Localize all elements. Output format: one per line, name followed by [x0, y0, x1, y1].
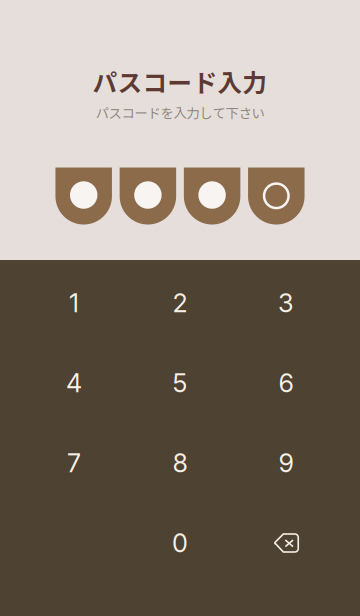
staticText: 9: [278, 448, 293, 478]
button[interactable]: 1: [21, 263, 127, 343]
button[interactable]: 4: [21, 343, 127, 423]
staticText: パスコード入力: [92, 63, 267, 99]
staticText: 1: [69, 288, 79, 318]
button[interactable]: 2: [127, 263, 233, 343]
button[interactable]: 7: [21, 423, 127, 503]
staticText: 2: [172, 288, 187, 318]
button[interactable]: 0: [127, 503, 233, 583]
staticText: 8: [172, 448, 187, 478]
button[interactable]: Delete: [233, 503, 339, 583]
staticText: 6: [278, 368, 293, 398]
staticText: 7: [67, 448, 81, 478]
staticText: 0: [172, 528, 188, 558]
staticText: 3: [278, 288, 294, 318]
staticText: パスコードを入力して下さい: [95, 103, 264, 122]
staticText: 4: [66, 368, 82, 398]
button[interactable]: 9: [233, 423, 339, 503]
button[interactable]: 8: [127, 423, 233, 503]
button[interactable]: 6: [233, 343, 339, 423]
staticText: 5: [172, 368, 187, 398]
button[interactable]: 5: [127, 343, 233, 423]
button[interactable]: 3: [233, 263, 339, 343]
